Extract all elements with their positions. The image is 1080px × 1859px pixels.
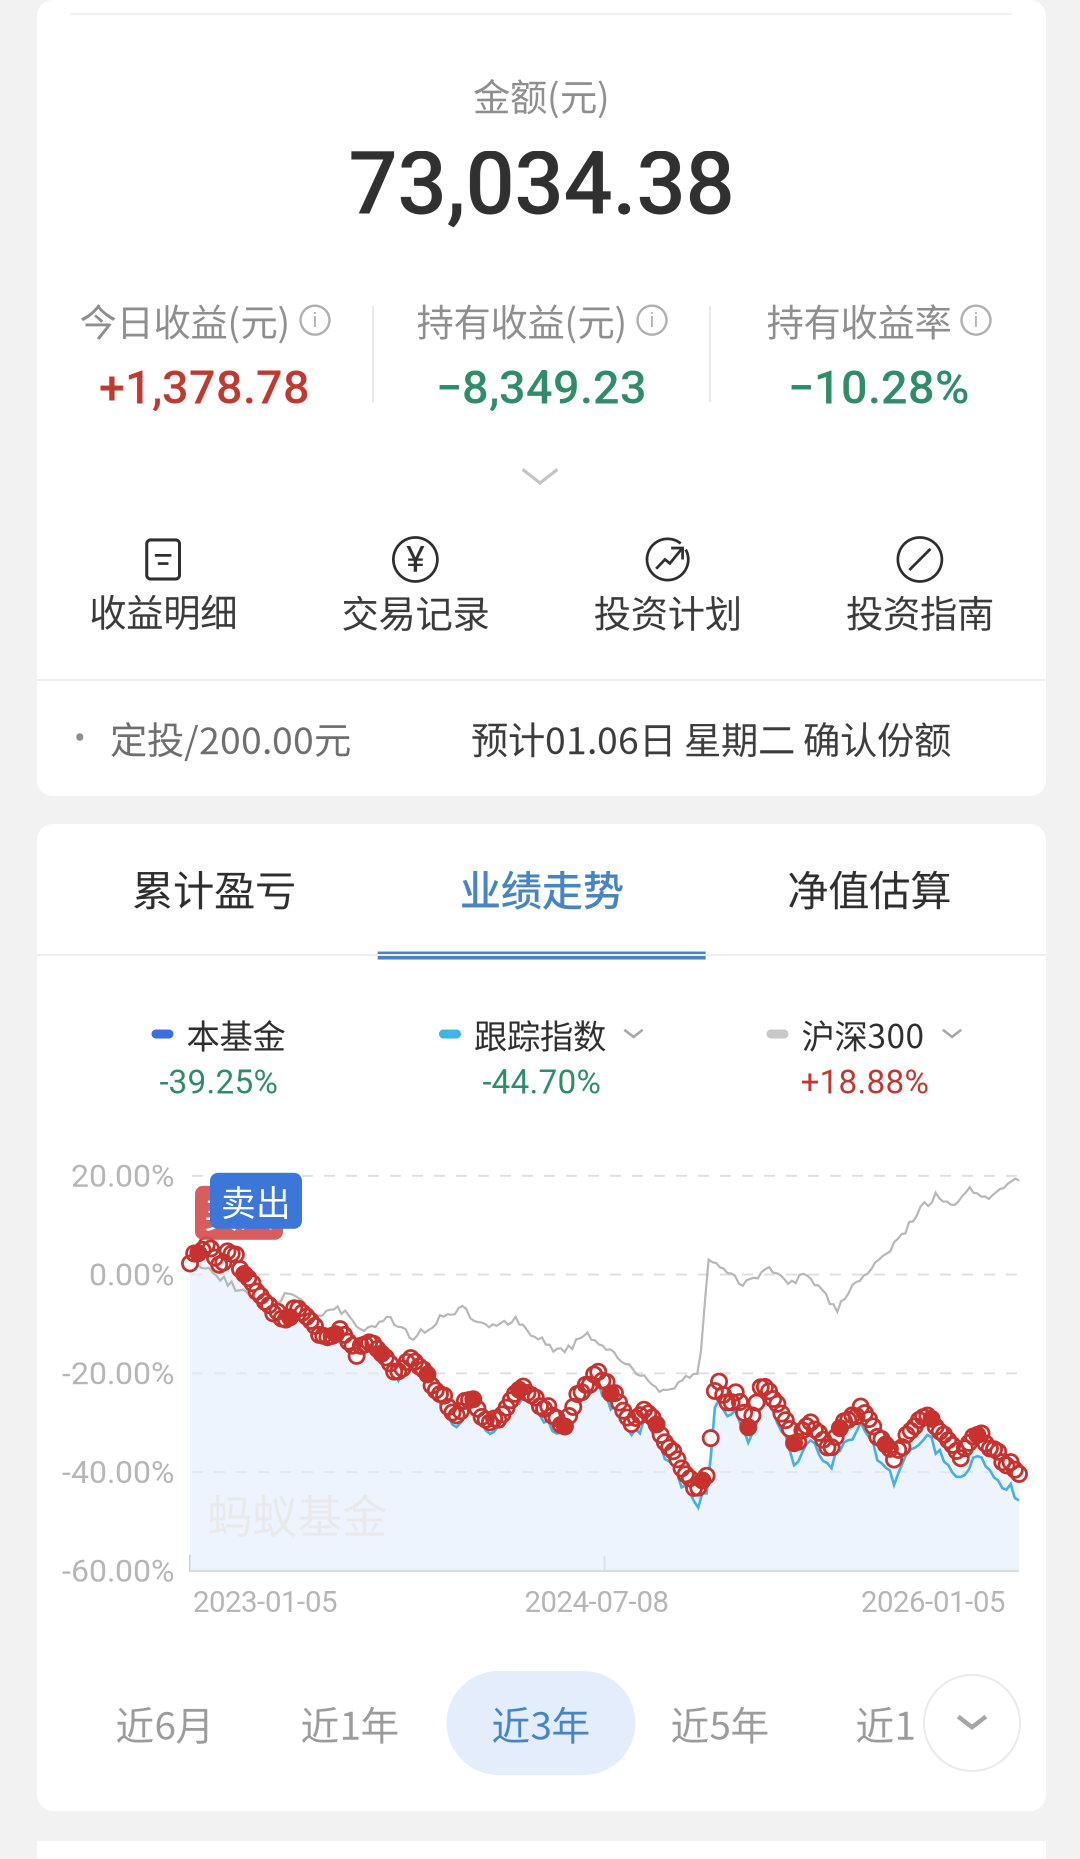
staticText: 金额(元) bbox=[473, 68, 610, 122]
staticText: ¥ bbox=[406, 538, 425, 581]
staticText: 20.00% bbox=[71, 1157, 174, 1195]
staticText: 净值估算 bbox=[787, 858, 951, 917]
staticText: +18.88% bbox=[800, 1062, 928, 1102]
button[interactable]: 近3年 bbox=[446, 1671, 635, 1775]
staticText: 近1年 bbox=[300, 1695, 399, 1751]
button[interactable]: 业绩走势 bbox=[378, 834, 705, 959]
staticText: -20.00% bbox=[62, 1355, 174, 1392]
staticText: 持有收益率 bbox=[766, 293, 951, 347]
staticText: 2024-07-08 bbox=[524, 1585, 668, 1619]
staticText: 蚂蚁基金 bbox=[207, 1481, 387, 1546]
button[interactable]: 收益明细 bbox=[37, 538, 289, 638]
staticText: 近3年 bbox=[491, 1695, 590, 1751]
staticText: 收益明细 bbox=[89, 583, 237, 638]
button[interactable]: 近5年 bbox=[625, 1671, 814, 1775]
staticText: 0.00% bbox=[89, 1256, 174, 1293]
staticText: 交易记录 bbox=[341, 584, 489, 639]
staticText: 近1年 bbox=[855, 1695, 954, 1751]
staticText: • bbox=[74, 718, 86, 758]
staticText: -44.70% bbox=[482, 1062, 600, 1102]
staticText: −8,349.23 bbox=[436, 360, 647, 415]
button[interactable]: 投资计划 bbox=[541, 537, 794, 639]
staticText: 定投/200.00元 bbox=[110, 711, 351, 765]
staticText: i bbox=[973, 308, 978, 332]
staticText: 买入 bbox=[204, 1188, 274, 1238]
staticText: 73,034.38 bbox=[348, 133, 734, 235]
button[interactable]: 近6月 bbox=[70, 1671, 259, 1775]
staticText: −10.28% bbox=[788, 360, 969, 415]
staticText: 卖出 bbox=[221, 1176, 291, 1226]
button[interactable]: • bbox=[37, 681, 1046, 795]
staticText: 沪深300 bbox=[801, 1010, 924, 1058]
staticText: 今日收益(元) bbox=[79, 293, 290, 347]
staticText: i bbox=[649, 308, 654, 332]
staticText: +1,378.78 bbox=[99, 360, 310, 415]
button[interactable]: 近1年 bbox=[810, 1671, 999, 1775]
button[interactable]: 展开更多区间 bbox=[916, 1667, 1028, 1779]
staticText: 累计盈亏 bbox=[132, 858, 296, 917]
button[interactable]: 投资指南 bbox=[794, 537, 1046, 639]
button[interactable]: ¥ bbox=[289, 537, 541, 639]
staticText: 跟踪指数 bbox=[474, 1010, 606, 1058]
staticText: 近5年 bbox=[670, 1695, 769, 1751]
button[interactable]: 近1年 bbox=[255, 1671, 444, 1775]
staticText: -39.25% bbox=[159, 1062, 277, 1102]
staticText: 投资指南 bbox=[846, 584, 994, 639]
staticText: 近6月 bbox=[115, 1695, 214, 1751]
staticText: -60.00% bbox=[62, 1552, 174, 1590]
button[interactable]: 累计盈亏 bbox=[50, 834, 378, 959]
staticText: -40.00% bbox=[62, 1453, 174, 1491]
staticText: 投资计划 bbox=[594, 584, 742, 639]
staticText: 2026-01-05 bbox=[861, 1585, 1005, 1619]
staticText: 2023-01-05 bbox=[193, 1585, 337, 1619]
staticText: 业绩走势 bbox=[460, 858, 624, 917]
staticText: 持有收益(元) bbox=[416, 293, 627, 347]
staticText: 预计01.06日 星期二 确认份额 bbox=[471, 711, 951, 765]
staticText: 本基金 bbox=[186, 1010, 285, 1058]
staticText: i bbox=[312, 308, 317, 332]
button[interactable]: 净值估算 bbox=[705, 834, 1033, 959]
